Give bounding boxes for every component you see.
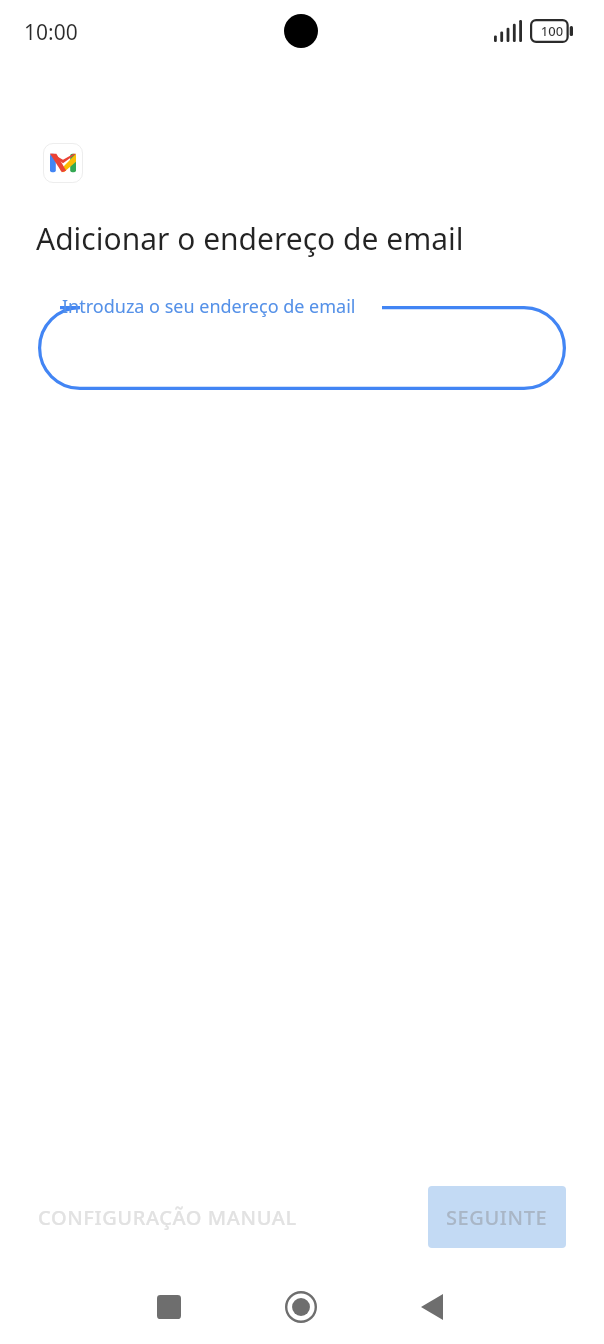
staticText: Adicionar o endereço de email [36, 218, 464, 259]
button[interactable]: CONFIGURAÇÃO MANUAL [38, 1204, 297, 1231]
button[interactable]: Recent apps [139, 1277, 199, 1337]
staticText: CONFIGURAÇÃO MANUAL [38, 1204, 297, 1231]
staticText: 10:00 [24, 18, 78, 47]
button[interactable] [38, 306, 566, 390]
button[interactable]: Home [271, 1277, 331, 1337]
staticText: 100 [535, 22, 569, 40]
staticText: Introduza o seu endereço de email [62, 294, 356, 319]
button[interactable]: SEGUINTE [428, 1186, 566, 1248]
button[interactable]: Back [402, 1277, 462, 1337]
staticText: SEGUINTE [446, 1204, 548, 1231]
